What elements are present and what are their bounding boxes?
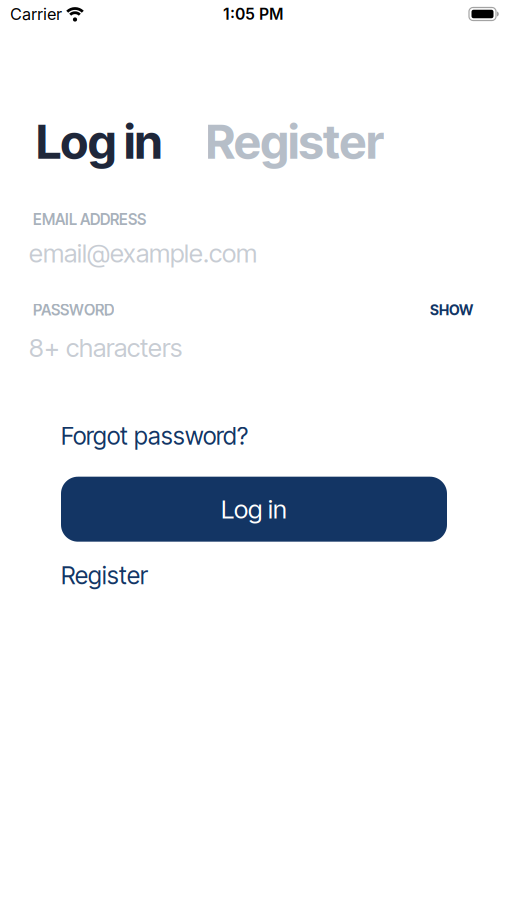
staticText: email@example.com	[29, 238, 257, 269]
staticText: Log in	[36, 113, 162, 170]
staticText: 8+ characters	[29, 332, 182, 363]
staticText: Register	[205, 113, 384, 170]
staticText: Carrier	[10, 4, 62, 24]
button[interactable]: SHOW	[430, 301, 473, 319]
staticText: EMAIL ADDRESS	[33, 210, 146, 229]
staticText: Register	[61, 561, 148, 590]
button[interactable]: Forgot password?	[61, 421, 248, 451]
staticText: Forgot password?	[61, 421, 248, 451]
button[interactable]: Log in	[61, 477, 447, 542]
staticText: PASSWORD	[33, 301, 114, 319]
staticText: Log in	[221, 494, 287, 525]
button[interactable]: Register	[205, 113, 384, 170]
staticText: SHOW	[430, 301, 473, 319]
button[interactable]: Register	[61, 561, 148, 590]
staticText: 1:05 PM	[223, 4, 284, 23]
